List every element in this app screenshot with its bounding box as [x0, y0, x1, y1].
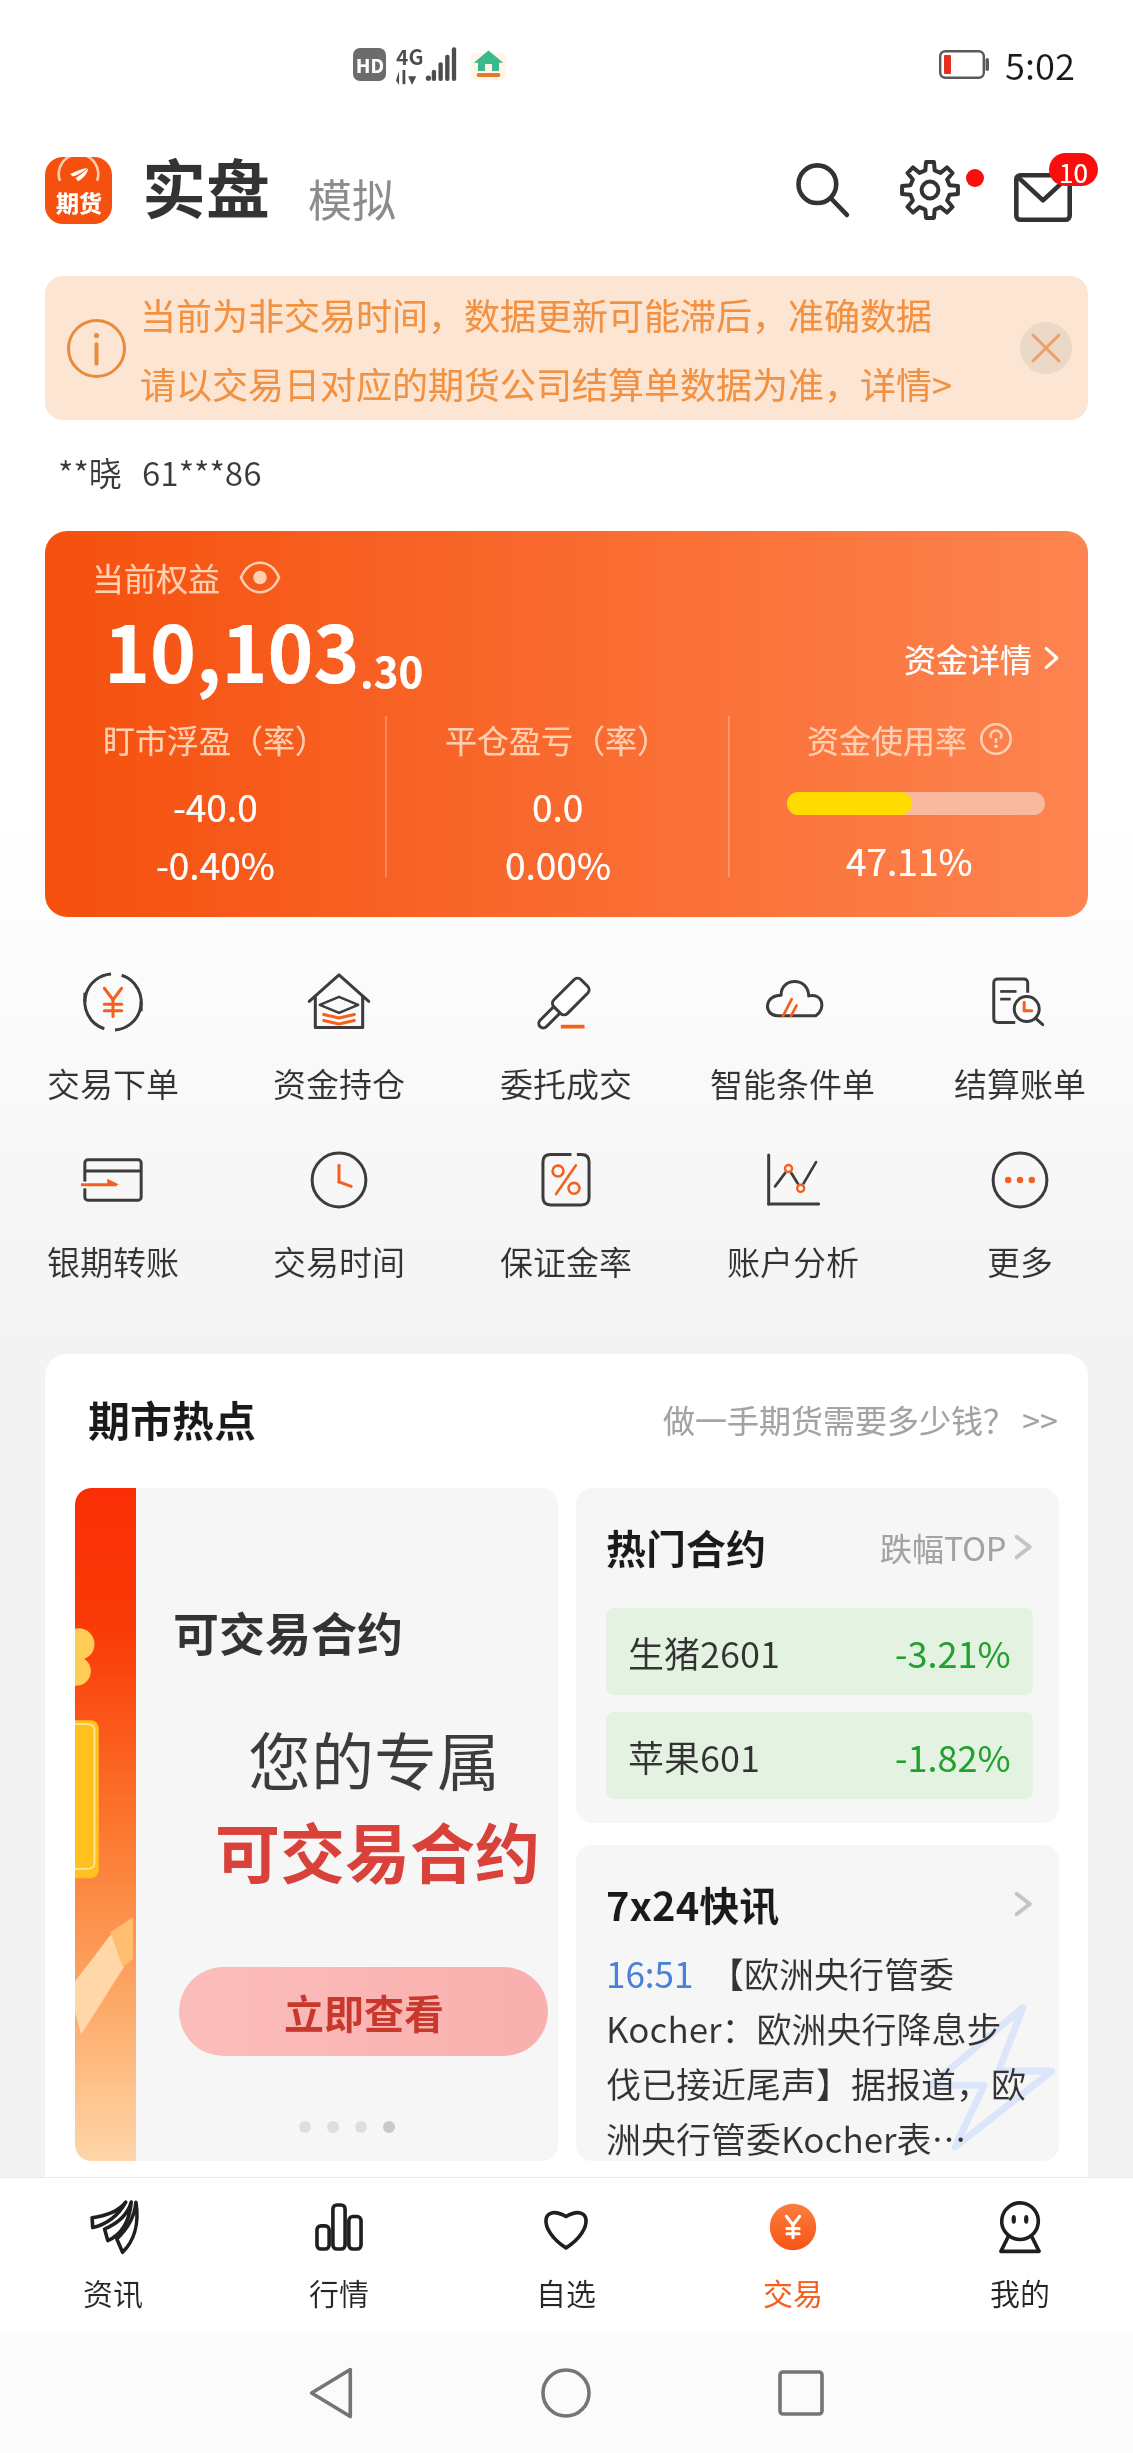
staticText: -3.21% [895, 1626, 1011, 1678]
staticText: 保证金率 [500, 1237, 632, 1285]
staticText: -1.82% [895, 1730, 1011, 1782]
staticText: 模拟 [308, 166, 396, 230]
button[interactable]: Home [521, 2348, 611, 2438]
staticText: 资金详情 [904, 635, 1033, 681]
button[interactable]: Search [784, 152, 860, 228]
button[interactable]: 自选 [452, 2178, 679, 2333]
staticText: 结算账单 [954, 1059, 1086, 1107]
staticText: 资讯 [83, 2270, 143, 2313]
staticText: 可交易合约 [215, 1803, 541, 1897]
staticText: 智能条件单 [710, 1059, 875, 1107]
button[interactable]: 苹果601 [606, 1712, 1033, 1799]
staticText: 苹果601 [628, 1730, 760, 1782]
button[interactable]: 做一手期货需要多少钱？ >> [659, 1392, 1062, 1446]
staticText: HD [356, 51, 384, 79]
button[interactable]: 结算账单 [906, 966, 1133, 1111]
staticText: 实盘 [142, 139, 270, 232]
button[interactable]: 我的 [906, 2178, 1133, 2333]
staticText: 期货 [56, 185, 102, 218]
staticText: 61***86 [142, 448, 262, 490]
staticText: 10 [1059, 153, 1088, 186]
button[interactable]: Recent apps [756, 2348, 846, 2438]
staticText: 热门合约 [606, 1518, 766, 1576]
staticText: 平仓盈亏（率） [445, 716, 670, 762]
staticText: 行情 [309, 2270, 369, 2313]
button[interactable]: 银期转账 [0, 1144, 226, 1289]
button[interactable]: Toggle balance visibility [241, 565, 279, 589]
button[interactable]: Close [1020, 322, 1072, 374]
staticText: -0.40% [156, 837, 275, 891]
button[interactable]: 资金持仓 [226, 966, 452, 1111]
button[interactable]: 生猪2601 [606, 1608, 1033, 1695]
button[interactable]: 交易 [679, 2178, 906, 2333]
staticText: 我的 [990, 2270, 1050, 2313]
staticText: 4G [396, 41, 424, 71]
button[interactable]: 7x24快讯 [576, 1845, 1059, 2161]
staticText: **晓 [58, 448, 122, 490]
button[interactable]: 交易时间 [226, 1144, 452, 1289]
staticText: 跌幅TOP [880, 1524, 1007, 1570]
button[interactable]: Back [285, 2348, 375, 2438]
button[interactable]: Settings [892, 152, 968, 228]
button[interactable]: 更多 [906, 1144, 1133, 1289]
staticText: 当前权益 [92, 554, 221, 600]
staticText: 立即查看 [284, 1983, 444, 2041]
button[interactable]: 智能条件单 [679, 966, 906, 1111]
staticText: 期市热点 [88, 1388, 257, 1449]
button[interactable]: 账户分析 [679, 1144, 906, 1289]
button[interactable]: 交易下单 [0, 966, 226, 1111]
staticText: 自选 [536, 2270, 596, 2313]
staticText: .30 [360, 639, 424, 700]
button[interactable]: 立即查看 [179, 1967, 548, 2056]
button[interactable]: 可交易合约 [75, 1488, 558, 2161]
staticText: 委托成交 [500, 1059, 632, 1107]
staticText: 银期转账 [47, 1237, 179, 1285]
staticText: 交易 [763, 2270, 823, 2313]
staticText: 盯市浮盈（率） [103, 716, 328, 762]
staticText: 您的专属 [248, 1712, 500, 1803]
staticText: 0.00% [505, 837, 611, 891]
staticText: -40.0 [173, 779, 258, 833]
button[interactable]: 热门合约 [576, 1488, 1059, 1823]
staticText: 10,103 [104, 593, 360, 706]
button[interactable]: 行情 [226, 2178, 452, 2333]
button[interactable]: **晓 [0, 448, 1133, 490]
button[interactable]: 当前为非交易时间，数据更新可能滞后，准确数据 [45, 276, 1088, 420]
staticText: 资金使用率 [807, 716, 968, 762]
button[interactable]: 保证金率 [452, 1144, 679, 1289]
staticText: 做一手期货需要多少钱？ >> [663, 1396, 1058, 1442]
staticText: 资金持仓 [273, 1059, 405, 1107]
staticText: 可交易合约 [173, 1598, 403, 1665]
button[interactable]: 资金详情 [898, 629, 1066, 687]
button[interactable]: Messages [1005, 152, 1081, 228]
staticText: 当前为非交易时间，数据更新可能滞后，准确数据 [140, 288, 933, 340]
staticText: 交易下单 [47, 1059, 179, 1107]
staticText: 0.0 [532, 779, 584, 833]
staticText: 账户分析 [727, 1237, 859, 1285]
staticText: 生猪2601 [628, 1626, 780, 1678]
staticText: 请以交易日对应的期货公司结算单数据为准，详情> [140, 357, 952, 409]
button[interactable]: 资讯 [0, 2178, 226, 2333]
staticText: 47.11% [846, 833, 973, 887]
staticText: 5:02 [1005, 38, 1075, 90]
staticText: 更多 [987, 1237, 1053, 1285]
staticText: 交易时间 [273, 1237, 405, 1285]
staticText: 16:51 【欧洲央行管委Kocher：欧洲央行降息步伐已接近尾声】据报道，欧洲… [606, 1947, 1033, 2161]
button[interactable]: 委托成交 [452, 966, 679, 1111]
staticText: 7x24快讯 [606, 1875, 780, 1933]
